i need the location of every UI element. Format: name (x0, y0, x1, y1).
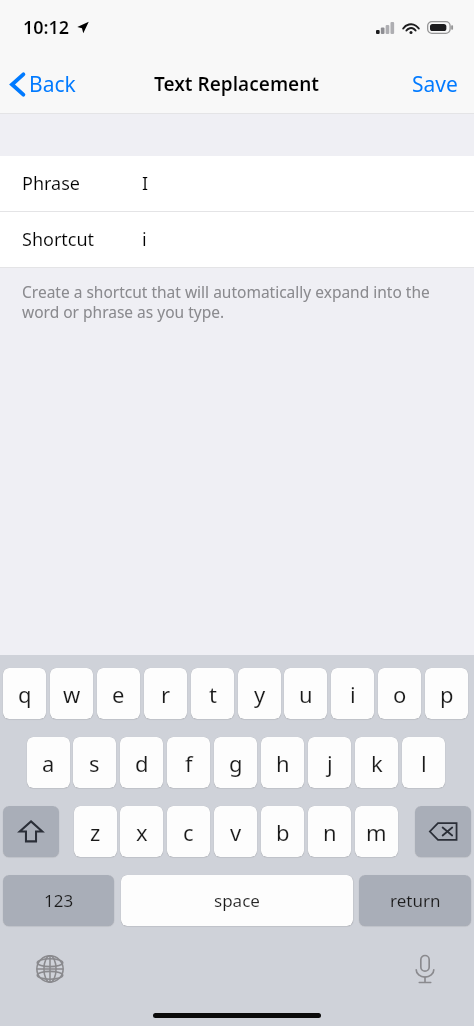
staticText: h (276, 748, 290, 778)
staticText: Shortcut (22, 227, 95, 252)
staticText: o (393, 679, 407, 709)
button[interactable]: Shortcut (0, 212, 474, 267)
button[interactable]: l (402, 737, 445, 788)
button[interactable]: r (144, 668, 187, 719)
button[interactable]: p (425, 668, 468, 719)
staticText: s (89, 748, 100, 778)
staticText: c (183, 817, 194, 847)
button[interactable]: s (73, 737, 116, 788)
button[interactable]: i (331, 668, 374, 719)
staticText: l (421, 748, 427, 778)
button[interactable]: u (284, 668, 327, 719)
staticText: k (371, 748, 383, 778)
button[interactable]: Phrase (0, 156, 474, 211)
staticText: y (254, 679, 266, 709)
button[interactable]: n (308, 806, 351, 857)
button[interactable]: y (238, 668, 281, 719)
button[interactable]: k (355, 737, 398, 788)
button[interactable]: Delete (415, 806, 471, 857)
staticText: p (440, 679, 454, 709)
staticText: m (366, 817, 387, 847)
staticText: 123 (44, 889, 74, 912)
button[interactable]: z (74, 806, 117, 857)
button[interactable]: f (167, 737, 210, 788)
button[interactable]: b (261, 806, 304, 857)
staticText: d (135, 748, 149, 778)
staticText: Back (29, 70, 76, 99)
button[interactable]: Dictate (403, 947, 447, 991)
staticText: u (299, 679, 313, 709)
staticText: g (229, 748, 243, 778)
button[interactable]: j (308, 737, 351, 788)
staticText: v (230, 817, 242, 847)
button[interactable]: Shift (3, 806, 59, 857)
button[interactable]: d (120, 737, 163, 788)
staticText: q (18, 679, 32, 709)
button[interactable]: w (50, 668, 93, 719)
staticText: space (214, 889, 260, 912)
button[interactable]: Back (0, 64, 88, 105)
button[interactable]: m (355, 806, 398, 857)
button[interactable]: space (121, 875, 353, 926)
button[interactable]: a (27, 737, 70, 788)
button[interactable]: h (261, 737, 304, 788)
button[interactable]: Change keyboard (28, 947, 72, 991)
staticText: Text Replacement (154, 71, 320, 97)
button[interactable]: 123 (3, 875, 114, 926)
button[interactable]: t (191, 668, 234, 719)
button[interactable]: Save (396, 62, 474, 107)
button[interactable]: q (3, 668, 46, 719)
staticText: I (142, 171, 149, 196)
button[interactable]: return (359, 875, 471, 926)
button[interactable]: o (378, 668, 421, 719)
staticText: Create a shortcut that will automaticall… (22, 281, 430, 323)
staticText: Phrase (22, 171, 80, 196)
staticText: n (323, 817, 337, 847)
staticText: i (350, 679, 356, 709)
staticText: Save (412, 70, 458, 99)
staticText: return (390, 889, 441, 912)
staticText: w (63, 679, 81, 709)
button[interactable]: e (97, 668, 140, 719)
button[interactable]: v (214, 806, 257, 857)
staticText: i (142, 227, 147, 252)
staticText: f (185, 748, 193, 778)
staticText: b (276, 817, 290, 847)
staticText: j (327, 748, 333, 778)
button[interactable]: x (120, 806, 163, 857)
staticText: e (112, 679, 125, 709)
staticText: t (209, 679, 217, 709)
button[interactable]: g (214, 737, 257, 788)
staticText: x (136, 817, 148, 847)
button[interactable]: c (167, 806, 210, 857)
staticText: z (90, 817, 101, 847)
staticText: r (161, 679, 171, 709)
staticText: a (42, 748, 55, 778)
staticText: 10:12 (23, 15, 70, 40)
